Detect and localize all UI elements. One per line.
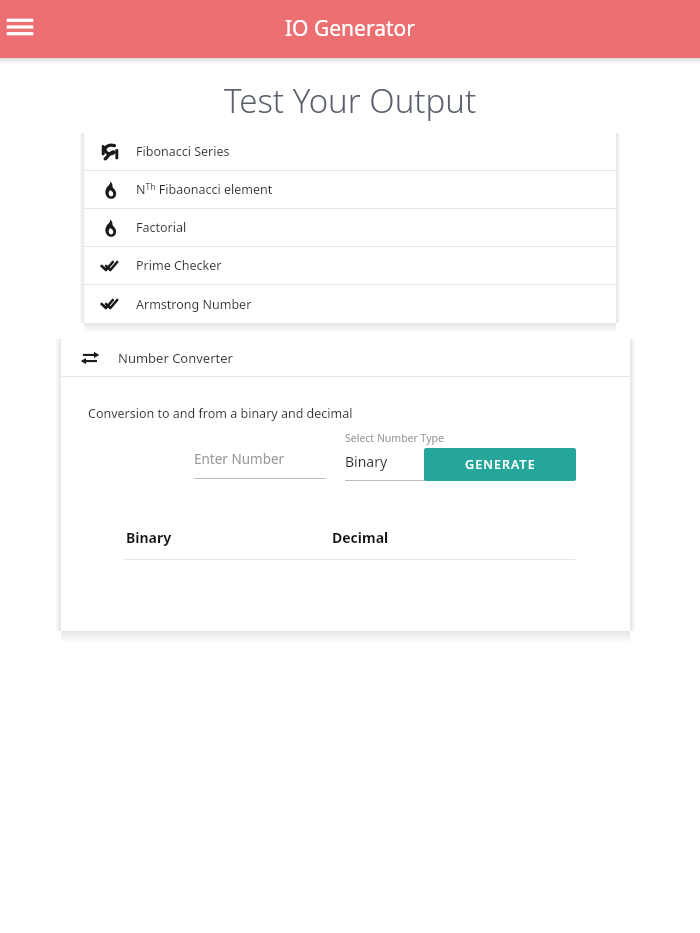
staticText: Enter Number (194, 450, 285, 468)
button[interactable]: Prime Checker (84, 247, 616, 285)
button[interactable]: Armstrong Number (84, 285, 616, 323)
staticText: IO Generator (285, 14, 415, 43)
button[interactable]: NTh Fibaonacci element (84, 171, 616, 209)
button[interactable]: Fibonacci Series (84, 133, 616, 171)
staticText: NTh Fibaonacci element (136, 181, 273, 198)
staticText: Decimal (332, 528, 389, 547)
staticText: Prime Checker (136, 257, 222, 274)
staticText: Test Your Output (224, 78, 477, 123)
button[interactable]: Factorial (84, 209, 616, 247)
button[interactable]: Enter Number (194, 450, 326, 479)
staticText: GENERATE (465, 456, 536, 473)
staticText: Conversion to and from a binary and deci… (88, 405, 353, 422)
button[interactable]: Select Number Type (345, 431, 476, 481)
staticText: Binary (126, 528, 172, 547)
button[interactable]: Number Converter (61, 339, 630, 376)
staticText: Fibonacci Series (136, 143, 230, 160)
staticText: Number Converter (118, 349, 233, 367)
staticText: Armstrong Number (136, 296, 252, 313)
staticText: Select Number Type (345, 431, 444, 445)
button[interactable]: Open navigation menu (0, 7, 40, 47)
staticText: Binary (345, 452, 388, 471)
button[interactable]: GENERATE (424, 448, 576, 481)
staticText: Factorial (136, 219, 187, 236)
